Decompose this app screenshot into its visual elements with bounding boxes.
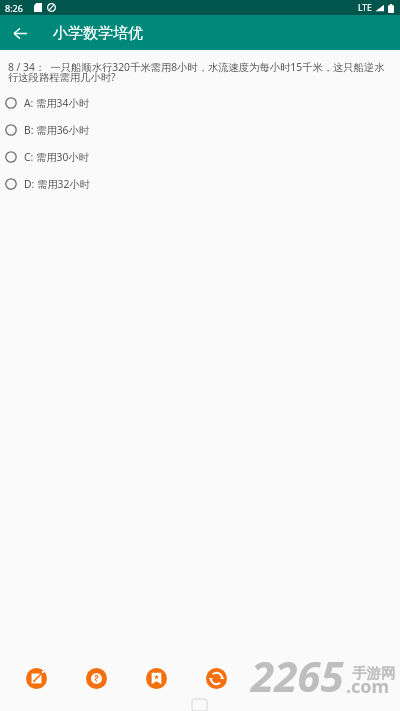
staticText: B: 需用36小时 <box>24 123 90 137</box>
staticText: 行这段路程需用几小时? <box>8 70 116 84</box>
staticText: A: 需用34小时 <box>24 96 89 110</box>
staticText: .com <box>346 674 390 699</box>
button[interactable]: Edit note <box>26 668 47 689</box>
staticText: C: 需用30小时 <box>24 150 89 164</box>
button[interactable]: A: 需用34小时 <box>0 89 400 116</box>
staticText: 2265 <box>251 647 344 704</box>
staticText: 8 / 34： 一只船顺水行320千米需用8小时，水流速度为每小时15千米，这只… <box>8 60 385 74</box>
button[interactable]: C: 需用30小时 <box>0 143 400 170</box>
staticText: 8:26 <box>5 2 23 14</box>
button[interactable]: D: 需用32小时 <box>0 170 400 197</box>
button[interactable]: Refresh <box>206 668 227 689</box>
button[interactable]: Bookmark <box>146 668 167 689</box>
staticText: LTE <box>358 2 372 14</box>
staticText: D: 需用32小时 <box>24 177 90 191</box>
staticText: 手游网 <box>352 664 396 682</box>
button[interactable]: Help <box>86 668 107 689</box>
staticText: 小学数学培优 <box>53 24 143 43</box>
button[interactable]: B: 需用36小时 <box>0 116 400 143</box>
button[interactable]: Back <box>6 19 34 47</box>
